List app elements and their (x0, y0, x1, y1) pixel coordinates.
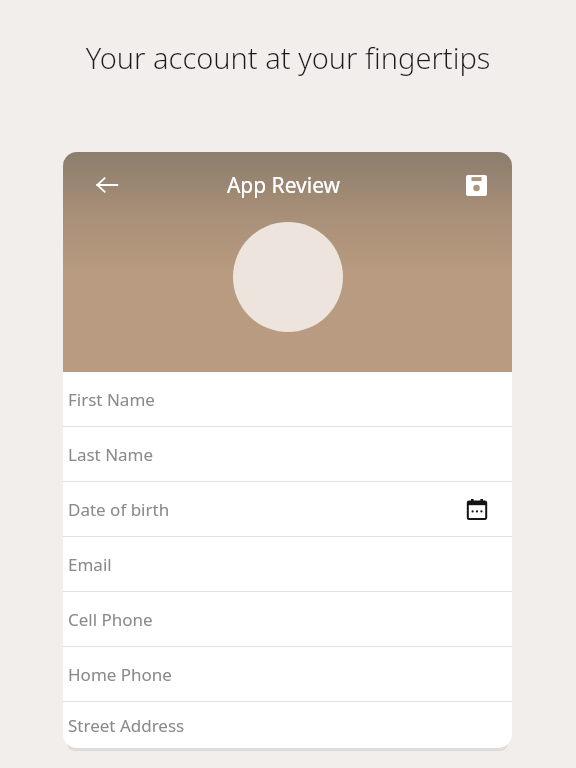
staticText: Your account at your fingertips (0, 38, 576, 77)
button[interactable]: Last Name (63, 427, 512, 481)
staticText: Last Name (68, 443, 494, 466)
button[interactable]: Pick date (460, 492, 494, 526)
staticText: Email (68, 553, 494, 576)
staticText: Cell Phone (68, 608, 494, 631)
button[interactable]: Email (63, 537, 512, 591)
button[interactable]: Profile photo (233, 222, 343, 332)
button[interactable]: First Name (63, 372, 512, 426)
staticText: Date of birth (68, 498, 460, 521)
staticText: Home Phone (68, 663, 494, 686)
button[interactable]: Cell Phone (63, 592, 512, 646)
button[interactable]: Save (452, 161, 500, 209)
staticText: Street Address (68, 714, 494, 737)
staticText: App Review (109, 171, 458, 200)
button[interactable]: Street Address (63, 702, 512, 748)
button[interactable]: Date of birth (63, 482, 512, 536)
button[interactable]: Back (81, 159, 133, 211)
button[interactable]: Home Phone (63, 647, 512, 701)
staticText: First Name (68, 388, 494, 411)
